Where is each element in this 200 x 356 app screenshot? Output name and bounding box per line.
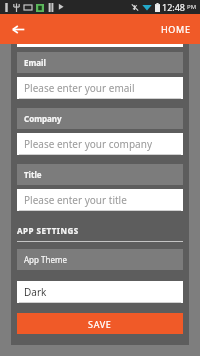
button[interactable]: Please enter your title — [17, 189, 183, 211]
staticText: APP SETTINGS — [17, 225, 79, 236]
button[interactable]: Email — [17, 52, 183, 73]
button[interactable]: Title — [17, 164, 183, 185]
button[interactable]: HOME — [152, 18, 200, 40]
staticText: Please enter your email — [24, 81, 135, 95]
button[interactable]: Please enter your company — [17, 133, 183, 155]
button[interactable]: SAVE — [17, 313, 183, 334]
staticText: Dark — [24, 285, 47, 299]
button[interactable]: Please enter your email — [17, 77, 183, 99]
staticText: 12:48 — [162, 1, 186, 13]
button[interactable]: Back — [5, 16, 31, 42]
staticText: Email — [24, 57, 46, 68]
button[interactable]: App Theme — [17, 249, 183, 270]
staticText: App Theme — [24, 254, 67, 265]
staticText: PM — [187, 3, 197, 11]
button[interactable]: Dark — [17, 281, 183, 303]
button[interactable]: Company — [17, 108, 183, 129]
staticText: Please enter your company — [24, 137, 153, 151]
staticText: Company — [24, 113, 62, 124]
staticText: Please enter your title — [24, 193, 127, 207]
staticText: Title — [24, 169, 42, 180]
staticText: HOME — [161, 23, 191, 35]
staticText: SAVE — [88, 318, 112, 330]
